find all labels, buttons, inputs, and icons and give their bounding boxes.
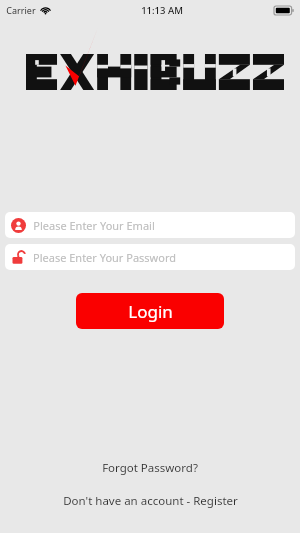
button[interactable]: Login <box>76 293 224 329</box>
button[interactable]: Forgot Password? <box>0 460 300 476</box>
staticText: Forgot Password? <box>102 460 198 476</box>
staticText: Carrier <box>6 4 36 16</box>
other: Email <box>11 218 26 233</box>
staticText: Don't have an account - Register <box>63 493 238 509</box>
staticText: 11:13 AM <box>141 4 183 17</box>
button[interactable]: Don't have an account - Register <box>0 493 300 509</box>
other: Password <box>11 250 26 265</box>
staticText: Please Enter Your Password <box>33 250 176 265</box>
staticText: Please Enter Your Email <box>33 218 155 233</box>
button[interactable]: Email <box>5 212 295 238</box>
button[interactable]: Password <box>5 244 295 270</box>
staticText: Login <box>128 300 173 323</box>
